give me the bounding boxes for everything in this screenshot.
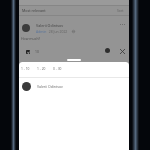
staticText: Most relevant: [22, 8, 46, 13]
button[interactable]: 1 - 20: [35, 65, 48, 71]
staticText: How much?: [21, 36, 41, 41]
staticText: 28 Jun 2022: [47, 29, 68, 34]
button[interactable]: 1 - 10: [19, 65, 32, 71]
staticText: Sort: [117, 8, 124, 13]
button[interactable]: Account: [105, 48, 110, 53]
staticText: Valerii Odintsov: [37, 84, 63, 89]
button[interactable]: More options: [120, 24, 125, 25]
staticText: 0 - 30: [53, 66, 62, 70]
button[interactable]: 0 - 30: [51, 65, 64, 71]
button[interactable]: Most relevant: [19, 6, 129, 15]
staticText: Valerii Odintsov: [36, 23, 64, 28]
staticText: 1 - 20: [37, 66, 46, 70]
staticText: 10: [35, 49, 39, 54]
staticText: 1 - 10: [21, 66, 30, 70]
staticText: Admin: [36, 29, 47, 34]
button[interactable]: Close: [119, 48, 126, 55]
